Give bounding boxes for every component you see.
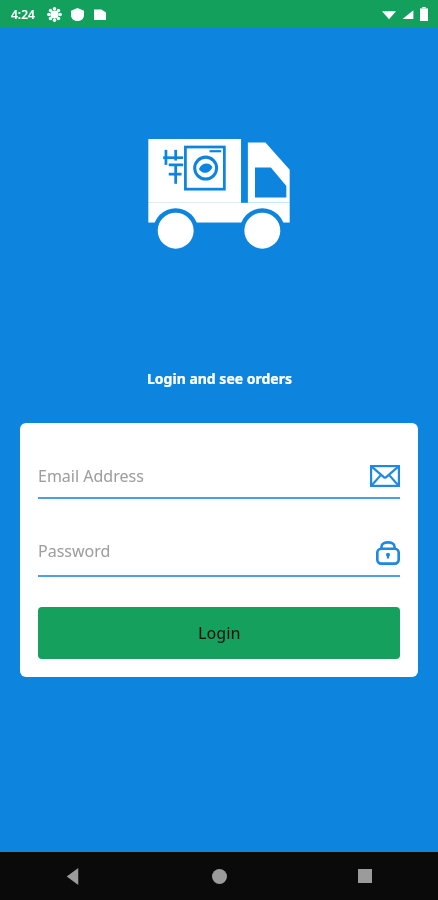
staticText: 4:24 (11, 6, 35, 22)
staticText: Email Address (38, 465, 370, 487)
staticText: Password (38, 540, 376, 562)
staticText: Login and see orders (147, 369, 292, 388)
button[interactable]: Login (38, 607, 400, 659)
button[interactable]: Recent apps (292, 852, 438, 900)
button[interactable]: Email Address (38, 465, 400, 499)
other: Email (370, 465, 400, 487)
other: Password (376, 537, 400, 565)
button[interactable]: Password (38, 537, 400, 577)
button[interactable]: Back (0, 852, 146, 900)
staticText: Login (198, 622, 241, 644)
button[interactable]: Home (146, 852, 292, 900)
